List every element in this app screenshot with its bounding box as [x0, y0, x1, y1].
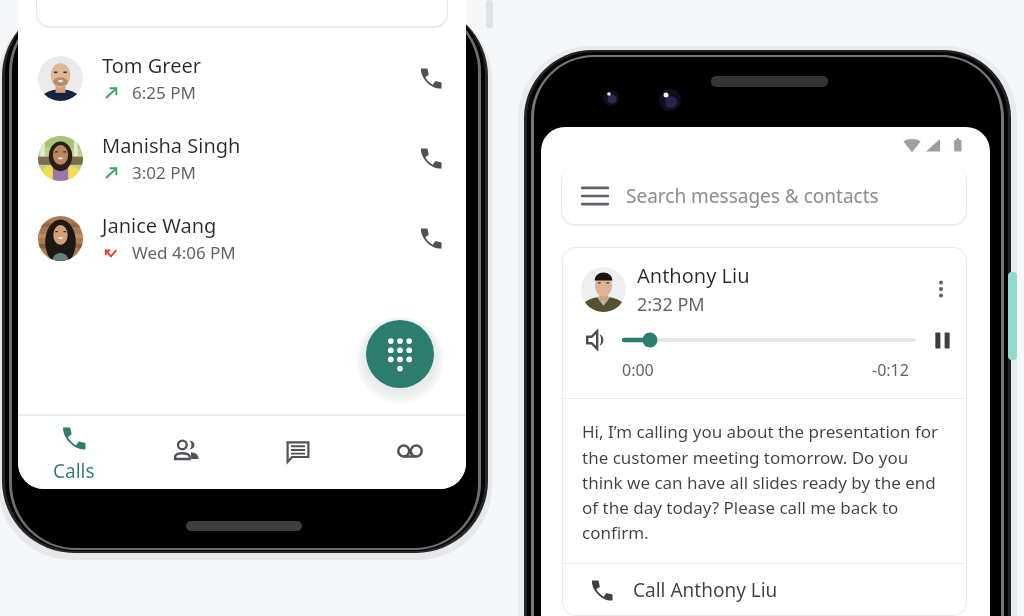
button[interactable]: Tom Greer [18, 38, 466, 118]
staticText: Hi, I’m calling you about the presentati… [582, 420, 941, 544]
staticText: -0:12 [872, 359, 909, 381]
staticText: 3:02 PM [132, 161, 196, 184]
staticText: Call Anthony Liu [633, 577, 778, 603]
button[interactable]: Call Manisha Singh [407, 134, 455, 182]
staticText: Tom Greer [102, 52, 201, 79]
button[interactable]: Janice Wang [18, 198, 466, 278]
button[interactable]: Dialpad [366, 320, 434, 388]
staticText: Calls [53, 458, 95, 484]
button[interactable]: Call Anthony Liu [562, 564, 967, 616]
button[interactable]: Pause [932, 330, 953, 351]
button[interactable]: Voicemail [354, 414, 466, 489]
button[interactable]: Manisha Singh [18, 118, 466, 198]
staticText: 0:00 [622, 359, 654, 381]
staticText: 2:32 PM [637, 292, 705, 317]
button[interactable]: Calls [18, 414, 130, 489]
staticText: Janice Wang [102, 212, 217, 239]
button[interactable]: Speaker [586, 330, 606, 350]
button[interactable]: Contacts [130, 414, 242, 489]
button[interactable]: Search messages & contacts [561, 166, 967, 225]
button[interactable]: Call Tom Greer [407, 54, 455, 102]
button[interactable]: Messages [242, 414, 354, 489]
staticText: Manisha Singh [102, 132, 241, 159]
staticText: Wed 4:06 PM [132, 241, 236, 264]
staticText: Anthony Liu [637, 262, 750, 289]
button[interactable]: More options [920, 268, 962, 310]
button[interactable]: Call Janice Wang [407, 214, 455, 262]
staticText: 6:25 PM [132, 81, 196, 104]
staticText: Search messages & contacts [626, 183, 879, 209]
